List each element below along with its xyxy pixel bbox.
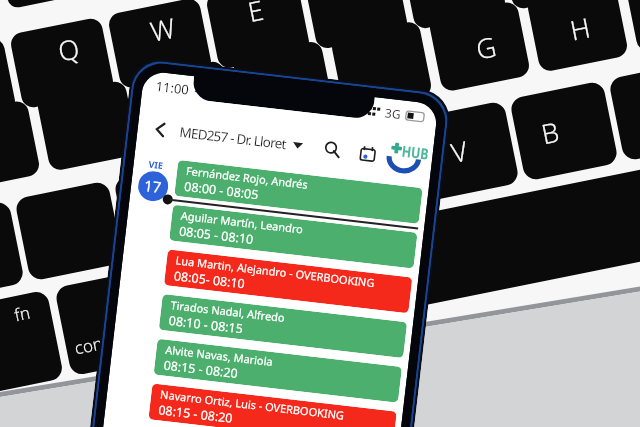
staticText: fn (12, 301, 32, 326)
staticText: Alvite Navas, Mariola (165, 342, 274, 369)
staticText: 08:05 - 08:10 (178, 222, 255, 248)
staticText: Navarro Ortiz, Luis - OVERBOOKING (159, 386, 345, 423)
staticText: 08:15 - 08:20 (163, 357, 239, 382)
button[interactable]: Aguilar Martín, Leandro (169, 205, 417, 269)
button[interactable]: Search (319, 136, 346, 163)
button[interactable]: HUB (386, 140, 422, 175)
button[interactable]: Fernández Rojo, Andrés (174, 160, 423, 224)
staticText: 17 (143, 175, 163, 197)
staticText: W (147, 9, 178, 49)
staticText: Fernández Rojo, Andrés (185, 163, 309, 192)
staticText: V (448, 132, 470, 170)
button[interactable]: Calendar (354, 140, 381, 167)
staticText: 11:00 (155, 77, 190, 99)
staticText: Lua Martin, Alejandro - OVERBOOKING (175, 252, 375, 290)
staticText: 08:00 - 08:05 (183, 178, 260, 203)
staticText: MED257 - Dr. Lloret (179, 123, 287, 153)
staticText: VIE (148, 158, 164, 171)
staticText: 08:15 - 08:20 (157, 401, 234, 427)
staticText: E (245, 0, 266, 29)
staticText: G (473, 27, 499, 67)
button[interactable]: Alvite Navas, Mariola (153, 339, 402, 403)
staticText: B (538, 113, 562, 151)
staticText: Aguilar Martín, Leandro (180, 208, 304, 237)
button[interactable]: Back (146, 115, 175, 144)
staticText: HUB (401, 141, 429, 163)
button[interactable]: Lua Martin, Alejandro - OVERBOOKING (164, 249, 412, 313)
staticText: Tirados Nadal, Alfredo (170, 297, 286, 325)
staticText: con (72, 331, 105, 360)
staticText: 3G (384, 104, 402, 122)
staticText: Q (55, 29, 82, 69)
button[interactable]: Tirados Nadal, Alfredo (159, 294, 407, 358)
staticText: 08:10 - 08:15 (168, 312, 244, 337)
staticText: 08:05- 08:10 (173, 267, 246, 292)
staticText: H (567, 8, 593, 48)
button[interactable]: Navarro Ortiz, Luis - OVERBOOKING (148, 383, 397, 427)
